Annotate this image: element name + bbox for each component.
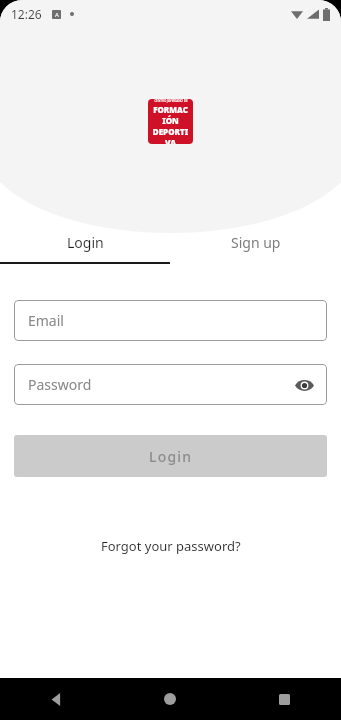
staticText: Forgot your password? — [101, 537, 241, 555]
staticText: 12:26 — [11, 6, 42, 22]
staticText: CENTRO JAVERIANO DE — [154, 99, 188, 103]
staticText: Login — [149, 447, 193, 466]
button[interactable]: Recent apps — [227, 678, 341, 720]
button[interactable]: Forgot your password? — [89, 531, 253, 561]
button[interactable]: Login — [0, 222, 170, 262]
button[interactable]: Password — [14, 364, 327, 405]
button[interactable]: Home — [113, 678, 227, 720]
staticText: Password — [28, 375, 92, 394]
staticText: Sign up — [231, 233, 281, 252]
staticText: DEPORTIVA — [152, 126, 189, 144]
staticText: Email — [28, 311, 64, 330]
button[interactable]: Login — [14, 435, 327, 477]
button[interactable]: Show password — [289, 370, 319, 400]
staticText: A — [55, 11, 59, 19]
staticText: FORMACIÓN — [152, 104, 189, 126]
button[interactable]: Sign up — [170, 222, 341, 262]
button[interactable]: Email — [14, 300, 327, 341]
staticText: Login — [67, 233, 104, 252]
button[interactable]: Back — [0, 678, 113, 720]
